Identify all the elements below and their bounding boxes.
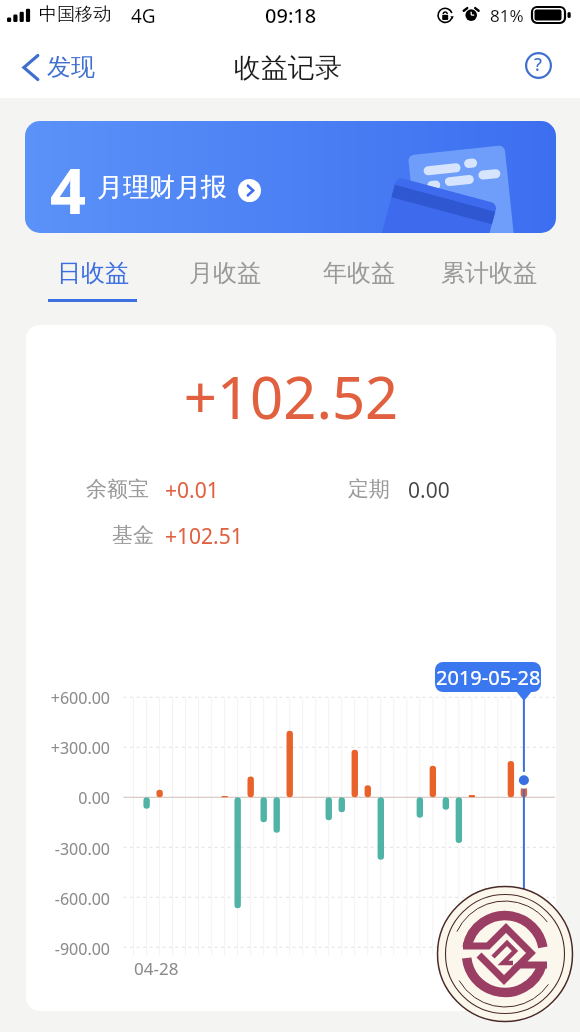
staticText: 0.00	[46, 787, 110, 809]
staticText: +102.51	[165, 522, 243, 551]
button[interactable]: Help	[521, 48, 555, 82]
staticText: 2019-05-28	[436, 664, 541, 691]
staticText: 中国移动	[39, 3, 111, 26]
staticText: +300.00	[46, 737, 110, 759]
staticText: 4	[50, 147, 87, 233]
staticText: 81%	[490, 4, 524, 27]
staticText: 月理财月报	[97, 171, 227, 204]
staticText: 累计收益	[441, 258, 537, 288]
staticText: 年收益	[323, 258, 395, 288]
staticText: 月收益	[189, 258, 261, 288]
staticText: +0.01	[165, 476, 219, 505]
staticText: 发现	[47, 52, 95, 82]
staticText: +102.52	[26, 357, 556, 436]
staticText: -600.00	[46, 888, 110, 910]
staticText: 09:18	[265, 2, 317, 29]
staticText: 日收益	[57, 258, 129, 288]
staticText: 4G	[131, 3, 156, 29]
staticText: -300.00	[46, 838, 110, 860]
button[interactable]: 日收益	[57, 258, 129, 308]
button[interactable]: 累计收益	[441, 258, 537, 308]
staticText: ?	[534, 52, 543, 77]
staticText: 04-28	[134, 957, 179, 980]
staticText: -900.00	[46, 938, 110, 960]
staticText: +600.00	[46, 687, 110, 709]
staticText: 收益记录	[234, 51, 342, 85]
button[interactable]: 4	[25, 121, 556, 233]
button[interactable]: 年收益	[323, 258, 395, 308]
staticText: 基金	[112, 522, 154, 548]
button[interactable]: 发现	[22, 48, 95, 86]
staticText: 0.00	[408, 476, 450, 505]
button[interactable]: 月收益	[189, 258, 261, 308]
staticText: 定期	[348, 476, 390, 502]
staticText: 余额宝	[86, 476, 149, 502]
